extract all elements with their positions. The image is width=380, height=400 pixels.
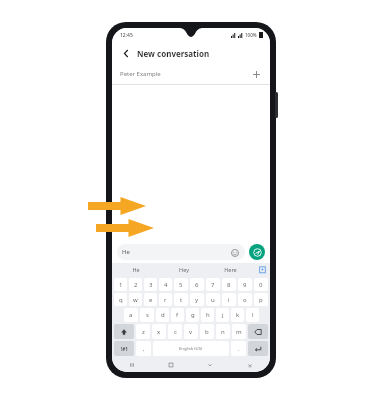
staticText: q (119, 296, 123, 304)
button[interactable]: 8 (222, 278, 236, 291)
staticText: 8 (227, 281, 231, 289)
button[interactable]: a (124, 308, 138, 322)
staticText: d (161, 311, 165, 319)
staticText: 9 (243, 281, 247, 289)
button[interactable]: e (144, 293, 157, 306)
staticText: He (132, 266, 140, 273)
staticText: n (221, 328, 225, 336)
button[interactable]: Hide keyboard (230, 358, 270, 372)
button[interactable]: Shift (114, 324, 134, 339)
staticText: c (174, 328, 177, 336)
button[interactable]: i (222, 293, 236, 306)
button[interactable]: Recents (112, 358, 151, 372)
staticText: 7 (211, 281, 215, 289)
staticText: e (149, 296, 153, 304)
button[interactable]: 3 (144, 278, 157, 291)
staticText: j (222, 311, 224, 319)
button[interactable]: He (112, 263, 160, 276)
button[interactable]: Enter (248, 341, 268, 356)
staticText: z (142, 328, 145, 336)
button[interactable]: r (159, 293, 172, 306)
button[interactable]: Hey (160, 263, 207, 276)
button[interactable]: l (246, 308, 259, 322)
button[interactable]: Home (151, 358, 190, 372)
button[interactable]: 9 (238, 278, 252, 291)
staticText: 5 (179, 281, 183, 289)
staticText: w (133, 296, 138, 304)
button[interactable]: 7 (206, 278, 220, 291)
button[interactable]: v (184, 324, 198, 339)
staticText: v (189, 328, 193, 336)
button[interactable]: x (152, 324, 166, 339)
staticText: p (259, 296, 263, 304)
button[interactable]: English (US) (153, 341, 229, 356)
button[interactable]: 0 (254, 278, 268, 291)
staticText: . (238, 345, 240, 353)
staticText: y (195, 296, 199, 304)
button[interactable]: u (206, 293, 220, 306)
staticText: i (228, 296, 230, 304)
staticText: u (211, 296, 215, 304)
button[interactable]: Back (190, 358, 230, 372)
staticText: 1 (119, 281, 123, 289)
staticText: 2 (134, 281, 138, 289)
button[interactable]: h (201, 308, 214, 322)
button[interactable]: 6 (190, 278, 204, 291)
staticText: o (243, 296, 247, 304)
button[interactable]: Send (249, 244, 265, 260)
staticText: 0 (259, 281, 263, 289)
button[interactable]: n (216, 324, 230, 339)
staticText: He (122, 248, 229, 256)
button[interactable]: f (171, 308, 184, 322)
button[interactable]: d (156, 308, 169, 322)
button[interactable]: y (190, 293, 204, 306)
button[interactable]: Peter Example (112, 64, 270, 84)
staticText: m (236, 328, 242, 336)
button[interactable]: Backspace (248, 324, 268, 339)
button[interactable]: Here (207, 263, 254, 276)
staticText: 12:45 (120, 32, 133, 39)
button[interactable]: t (174, 293, 188, 306)
button[interactable]: m (232, 324, 246, 339)
button[interactable]: 4 (159, 278, 172, 291)
button[interactable]: , (136, 341, 151, 356)
button[interactable]: 2 (129, 278, 142, 291)
staticText: b (205, 328, 209, 336)
button[interactable]: c (168, 324, 182, 339)
staticText: 4 (164, 281, 168, 289)
button[interactable]: s (140, 308, 154, 322)
staticText: Peter Example (120, 70, 250, 78)
button[interactable]: o (238, 293, 252, 306)
staticText: New conversation (137, 48, 210, 59)
staticText: r (164, 296, 167, 304)
staticText: a (129, 311, 133, 319)
button[interactable]: Emoji (229, 247, 240, 258)
staticText: g (191, 311, 195, 319)
button[interactable]: . (231, 341, 246, 356)
button[interactable]: g (186, 308, 199, 322)
staticText: h (206, 311, 210, 319)
staticText: 100% (245, 32, 257, 38)
button[interactable]: Add recipient (250, 68, 262, 80)
button[interactable]: z (136, 324, 150, 339)
button[interactable]: Back (119, 46, 133, 60)
button[interactable]: Clipboard (254, 263, 270, 276)
button[interactable]: He (117, 244, 245, 260)
button[interactable]: 5 (174, 278, 188, 291)
button[interactable]: q (114, 293, 127, 306)
button[interactable]: k (231, 308, 244, 322)
staticText: English (US) (179, 346, 203, 352)
staticText: k (236, 311, 240, 319)
staticText: s (146, 311, 149, 319)
staticText: t (180, 296, 183, 304)
button[interactable]: p (254, 293, 268, 306)
button[interactable]: b (200, 324, 214, 339)
button[interactable]: 1 (114, 278, 127, 291)
staticText: l (252, 311, 254, 319)
button[interactable]: j (216, 308, 229, 322)
button[interactable]: w (129, 293, 142, 306)
staticText: !#1 (121, 346, 128, 352)
button[interactable]: !#1 (114, 341, 134, 356)
staticText: 6 (195, 281, 199, 289)
staticText: Hey (179, 266, 189, 273)
